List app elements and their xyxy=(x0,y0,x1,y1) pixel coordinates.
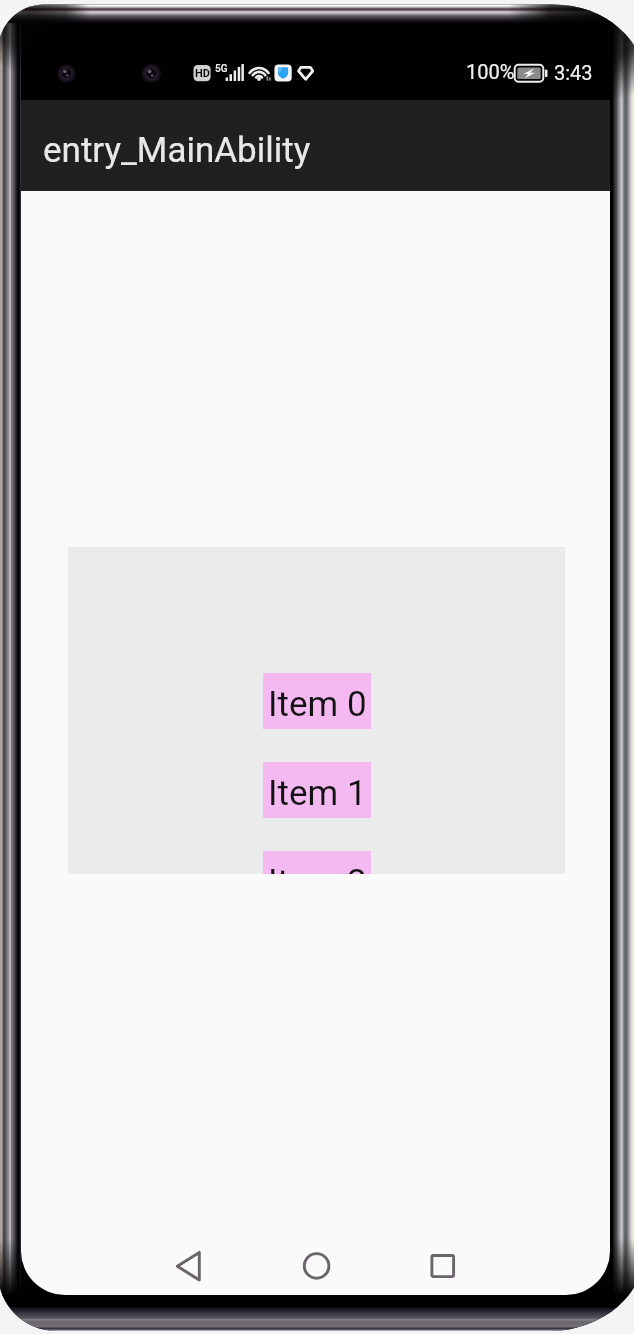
staticText: 3:43 xyxy=(554,61,593,84)
staticText: 5G xyxy=(215,63,228,75)
staticText: entry_MainAbility xyxy=(43,130,311,171)
button[interactable]: Item 2 xyxy=(263,851,371,874)
staticText: 100% xyxy=(466,60,515,83)
staticText: HD xyxy=(195,67,210,80)
button[interactable]: Back xyxy=(149,1227,227,1295)
button[interactable]: Recents xyxy=(404,1227,482,1295)
staticText: Item 1 xyxy=(268,773,367,814)
staticText: Item 2 xyxy=(268,862,367,874)
staticText: Item 0 xyxy=(268,684,367,725)
button[interactable]: Item 0 xyxy=(263,673,371,729)
button[interactable]: Home xyxy=(278,1227,356,1295)
button[interactable]: Item 1 xyxy=(263,762,371,818)
